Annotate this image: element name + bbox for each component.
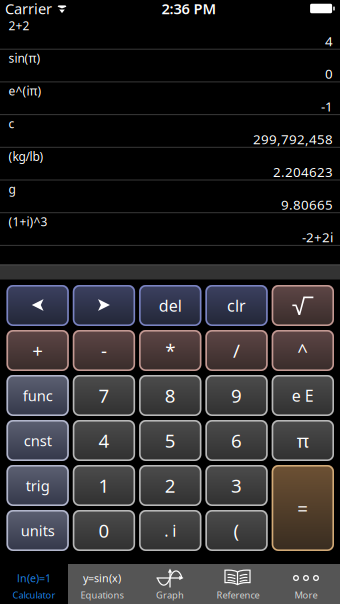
staticText: π (297, 428, 309, 453)
button[interactable]: 7 (73, 375, 135, 416)
button[interactable]: More (272, 564, 340, 604)
staticText: = (297, 496, 308, 520)
staticText: sin(π) (8, 50, 40, 66)
staticText: 2+2 (8, 17, 29, 33)
staticText: 1 (98, 473, 109, 498)
button[interactable]: . i (139, 510, 201, 551)
staticText: Equations (80, 589, 123, 601)
staticText: 299,792,458 (253, 130, 333, 148)
staticText: clr (227, 295, 246, 316)
staticText: 2:36 PM (161, 0, 216, 18)
button[interactable]: Right (73, 285, 135, 326)
staticText: 2.204623 (273, 163, 333, 181)
staticText: * (165, 338, 175, 363)
button[interactable]: ^ (272, 330, 334, 371)
button[interactable]: y=sin(x) (68, 564, 136, 604)
button[interactable]: 8 (139, 375, 201, 416)
button[interactable]: trig (6, 465, 69, 506)
button[interactable]: π (272, 420, 334, 461)
button[interactable]: - (73, 330, 135, 371)
staticText: ( (233, 518, 239, 543)
button[interactable]: clr (205, 285, 268, 326)
staticText: More (294, 589, 317, 601)
button[interactable]: Reference (204, 564, 272, 604)
staticText: trig (26, 476, 50, 495)
staticText: units (21, 521, 55, 540)
staticText: . i (164, 520, 176, 541)
staticText: 0 (98, 518, 109, 543)
button[interactable]: Left (6, 285, 69, 326)
staticText: (kg/lb) (8, 148, 43, 164)
staticText: 4 (325, 32, 333, 50)
staticText: e^(iπ) (8, 83, 41, 99)
button[interactable]: 4 (73, 420, 135, 461)
button[interactable]: 2 (139, 465, 201, 506)
button[interactable]: 5 (139, 420, 201, 461)
staticText: 6 (231, 428, 242, 453)
button[interactable]: * (139, 330, 201, 371)
staticText: 3 (231, 473, 242, 498)
staticText: Graph (156, 589, 184, 601)
button[interactable]: / (205, 330, 268, 371)
staticText: 2 (165, 473, 176, 498)
button[interactable]: Square root (272, 285, 334, 326)
staticText: del (159, 295, 182, 316)
button[interactable]: 0 (73, 510, 135, 551)
button[interactable]: 3 (205, 465, 268, 506)
button[interactable]: 6 (205, 420, 268, 461)
staticText: func (23, 386, 53, 405)
button[interactable]: func (6, 375, 69, 416)
button[interactable]: del (139, 285, 201, 326)
staticText: -2+2i (302, 228, 333, 246)
staticText: Reference (216, 589, 259, 601)
button[interactable]: 9 (205, 375, 268, 416)
button[interactable]: cnst (6, 420, 69, 461)
button[interactable]: ln(e)=1 (0, 564, 68, 604)
button[interactable]: Graph (136, 564, 204, 604)
button[interactable]: = (272, 465, 334, 551)
button[interactable]: units (6, 510, 69, 551)
staticText: 8 (165, 383, 176, 408)
button[interactable]: + (6, 330, 69, 371)
button[interactable]: ( (205, 510, 268, 551)
staticText: 5 (165, 428, 176, 453)
button[interactable]: e E (272, 375, 334, 416)
staticText: / (233, 338, 240, 363)
staticText: 0 (325, 65, 333, 82)
staticText: 9 (231, 383, 242, 408)
staticText: ^ (297, 338, 308, 363)
button[interactable]: 1 (73, 465, 135, 506)
staticText: 7 (98, 383, 109, 408)
staticText: 9.80665 (281, 196, 333, 213)
staticText: e E (292, 385, 314, 406)
staticText: Calculator (12, 589, 55, 601)
staticText: Carrier (5, 0, 52, 18)
staticText: (1+i)^3 (8, 214, 47, 230)
staticText: cnst (24, 431, 52, 450)
staticText: g (8, 181, 15, 197)
staticText: -1 (321, 97, 333, 115)
staticText: 4 (98, 428, 109, 453)
staticText: + (32, 338, 43, 363)
staticText: ln(e)=1 (17, 571, 51, 585)
staticText: c (8, 116, 14, 131)
staticText: - (101, 338, 107, 363)
staticText: y=sin(x) (83, 571, 121, 585)
